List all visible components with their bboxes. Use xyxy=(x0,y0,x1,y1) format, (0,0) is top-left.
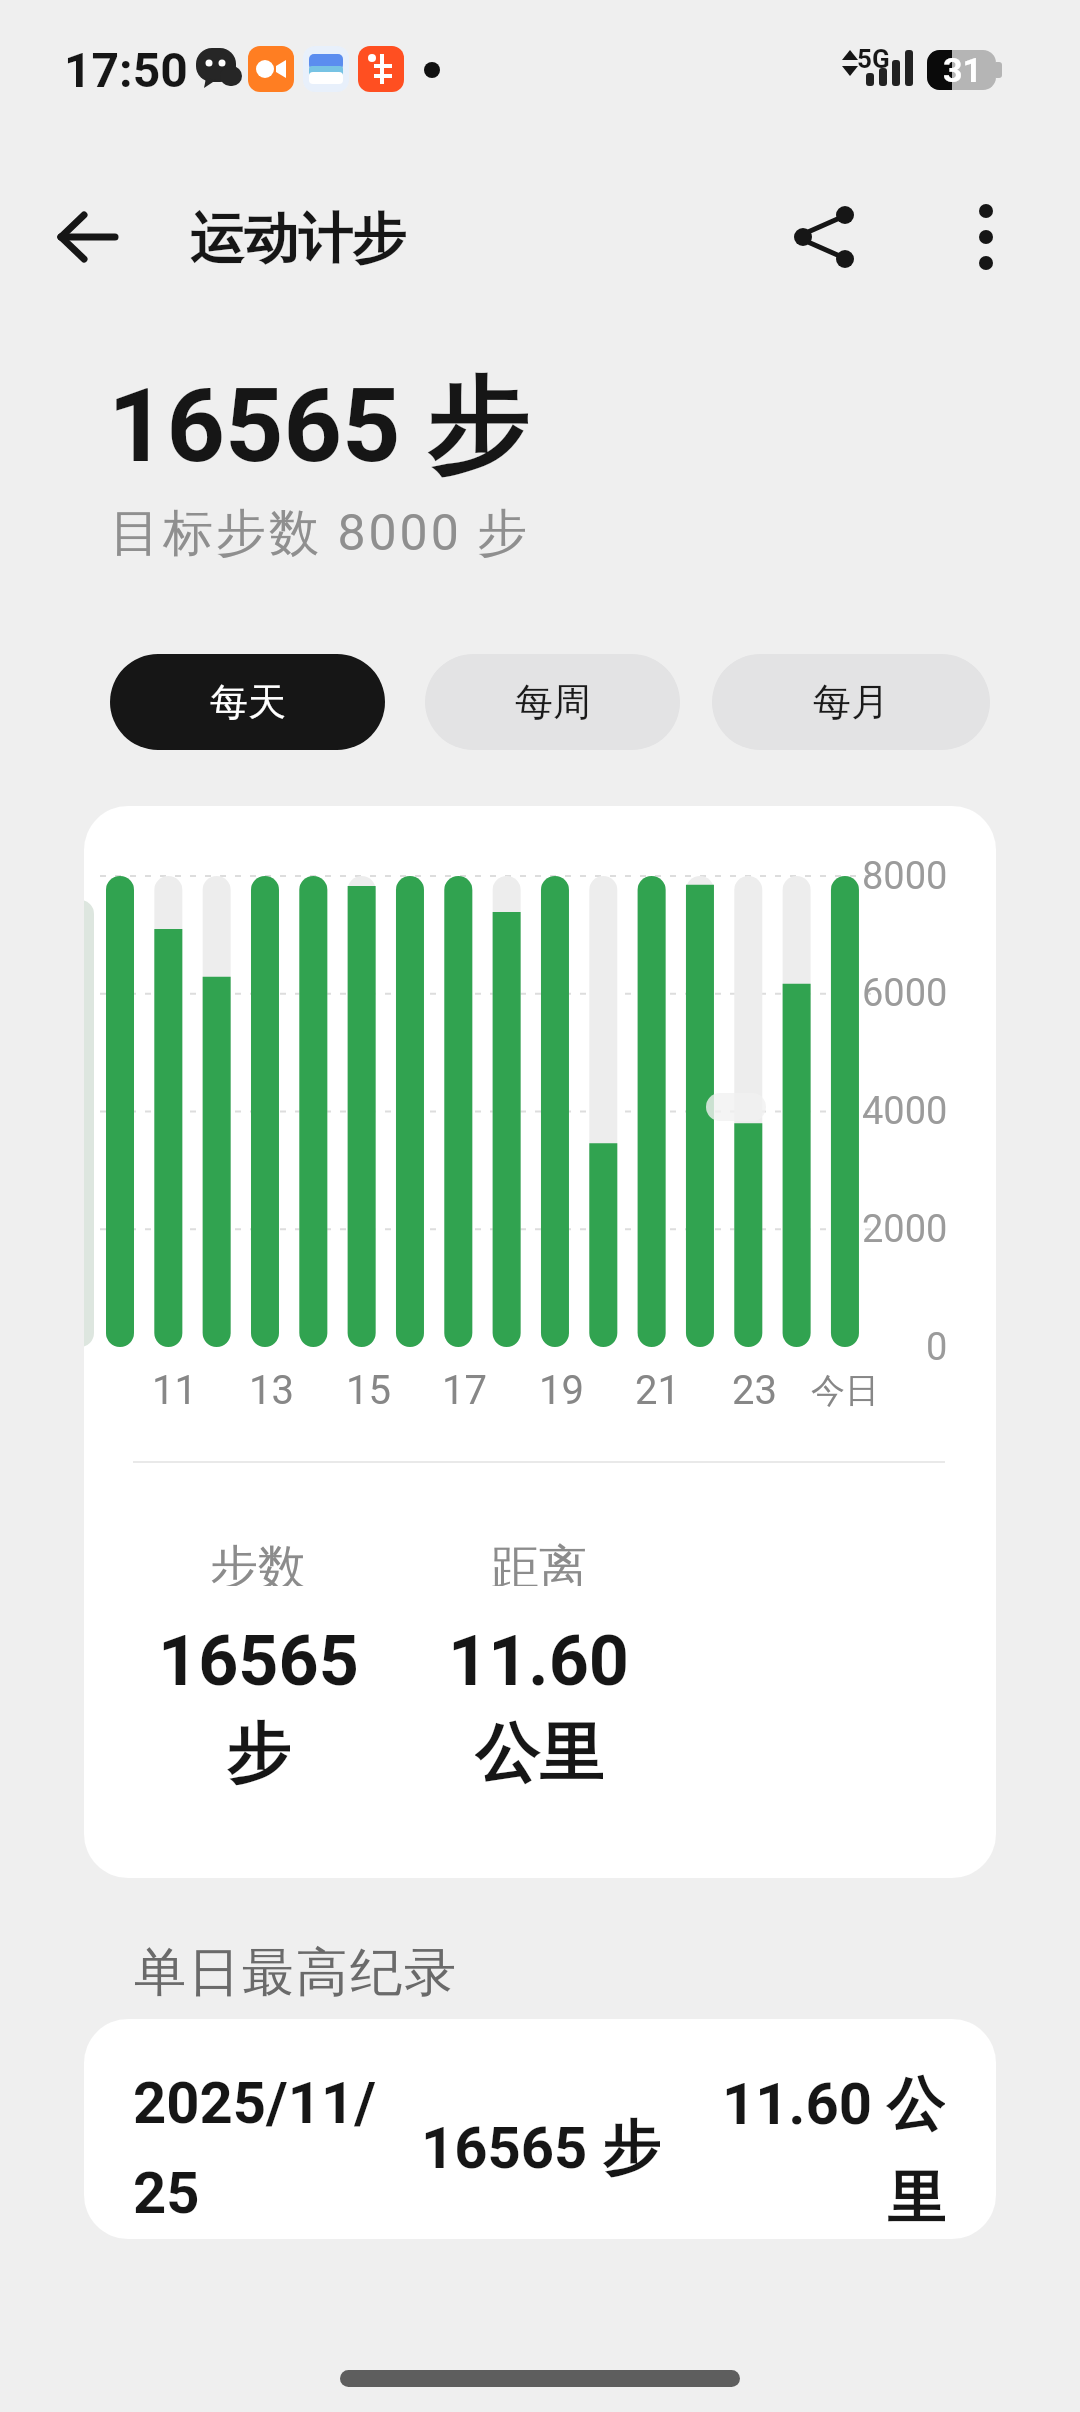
button[interactable] xyxy=(40,195,136,279)
staticText: 11.60 xyxy=(448,1620,630,1690)
staticText: 17 xyxy=(442,1367,487,1414)
staticText: 0 xyxy=(926,1325,948,1370)
staticText: 每月 xyxy=(813,678,889,726)
button[interactable] xyxy=(84,806,996,1878)
staticText: 目标步数 8000 步 xyxy=(110,502,531,565)
staticText: 里 xyxy=(887,2162,945,2232)
staticText: 11.60 公 xyxy=(722,2068,945,2138)
button[interactable]: 每周 xyxy=(425,654,680,750)
staticText: 16565 xyxy=(158,1620,359,1690)
staticText: 运动计步 xyxy=(190,205,406,273)
staticText: 11 xyxy=(152,1367,197,1414)
staticText: 距离 xyxy=(491,1538,587,1586)
staticText: 5G xyxy=(857,44,890,74)
staticText: 公里 xyxy=(475,1713,603,1787)
staticText: 每天 xyxy=(210,678,286,726)
staticText: 23 xyxy=(732,1367,777,1414)
button[interactable] xyxy=(84,2019,996,2239)
staticText: 16565 步 xyxy=(421,2112,660,2182)
staticText: 31 xyxy=(943,50,983,90)
staticText: 4000 xyxy=(862,1089,948,1134)
staticText: 2000 xyxy=(862,1207,948,1252)
staticText: 16565 步 xyxy=(108,363,529,491)
button[interactable] xyxy=(785,197,865,277)
staticText: 每周 xyxy=(515,678,591,726)
staticText: 25 xyxy=(133,2159,200,2227)
staticText: 步数 xyxy=(210,1538,306,1586)
staticText: 步 xyxy=(226,1713,290,1787)
staticText: 19 xyxy=(539,1367,584,1414)
button[interactable]: 每天 xyxy=(110,654,385,750)
staticText: 17:50 xyxy=(64,42,188,98)
staticText: 13 xyxy=(249,1367,294,1414)
button[interactable] xyxy=(950,197,1022,277)
staticText: 6000 xyxy=(862,971,948,1016)
button[interactable] xyxy=(340,2370,740,2387)
button[interactable]: 每月 xyxy=(712,654,990,750)
staticText: 今日 xyxy=(811,1369,879,1412)
staticText: 单日最高纪录 xyxy=(133,1940,457,2006)
staticText: 21 xyxy=(635,1367,680,1414)
staticText: 8000 xyxy=(862,854,948,899)
staticText: 2025/11/ xyxy=(133,2069,377,2137)
staticText: 15 xyxy=(346,1367,391,1414)
